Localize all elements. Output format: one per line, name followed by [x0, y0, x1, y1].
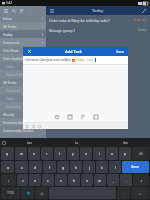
- staticText: Weekly: [3, 112, 15, 117]
- staticText: r: [46, 151, 48, 156]
- button[interactable]: Inbox: [0, 14, 46, 22]
- staticText: e: [33, 151, 35, 156]
- button[interactable]: .: [120, 174, 132, 186]
- button[interactable]: o: [106, 147, 118, 160]
- button[interactable]: Manage group ?: [46, 25, 150, 35]
- button[interactable]: Done: [122, 161, 149, 173]
- button[interactable]: Desserts Auto: [0, 118, 46, 126]
- button[interactable]: m: [94, 174, 106, 186]
- button[interactable]: Over Available: [0, 54, 46, 62]
- button[interactable]: Option 2: [31, 124, 35, 128]
- button[interactable]: Search: [10, 7, 17, 14]
- button[interactable]: Today: [0, 30, 46, 38]
- staticText: w: [20, 151, 23, 156]
- button[interactable]: p: [119, 147, 131, 160]
- button[interactable]: c: [42, 174, 54, 186]
- button[interactable]: v: [55, 174, 67, 186]
- button[interactable]: Personal: [0, 86, 46, 94]
- button[interactable]: Sort: [18, 7, 25, 14]
- button[interactable]: f: [43, 161, 56, 173]
- button[interactable]: t: [54, 147, 66, 160]
- button[interactable]: n: [81, 174, 93, 186]
- button[interactable]: Menu: [2, 7, 9, 14]
- button[interactable]: s: [15, 161, 28, 173]
- button[interactable]: Work / Life: [0, 70, 46, 78]
- button[interactable]: Edit: [141, 8, 147, 14]
- button[interactable]: too: [6, 141, 53, 145]
- button[interactable]: j: [83, 161, 95, 173]
- button[interactable]: a: [1, 161, 14, 173]
- button[interactable]: Weekly: [0, 110, 46, 118]
- button[interactable]: Someday: [0, 102, 46, 110]
- button[interactable]: q: [1, 147, 14, 160]
- button[interactable]: All Tasks: [0, 78, 46, 86]
- staticText: q: [6, 151, 9, 156]
- staticText: Someday: [6, 104, 21, 109]
- staticText: t: [59, 151, 61, 156]
- button[interactable]: Late: [0, 62, 46, 70]
- button[interactable]: to: [53, 141, 101, 145]
- button[interactable]: u: [80, 147, 92, 160]
- button[interactable]: Close: [26, 48, 33, 55]
- staticText: u: [85, 151, 88, 156]
- staticText: v: [60, 178, 62, 183]
- button[interactable]: g: [57, 161, 69, 173]
- staticText: a: [7, 165, 9, 170]
- button[interactable]: Navigation: [49, 8, 55, 14]
- button[interactable]: More: [26, 7, 33, 14]
- staticText: ⌫: [138, 152, 143, 155]
- button[interactable]: k: [96, 161, 108, 173]
- button[interactable]: ?123: [1, 187, 20, 199]
- staticText: 🌐: [26, 191, 30, 195]
- button[interactable]: ⌫: [132, 147, 149, 160]
- button[interactable]: y: [67, 147, 79, 160]
- button[interactable]: d: [29, 161, 42, 173]
- staticText: x: [34, 178, 36, 183]
- button[interactable]: 🌐: [21, 187, 34, 199]
- button[interactable]: ✦: [133, 174, 149, 186]
- button[interactable]: Priority: [78, 112, 87, 121]
- button[interactable]: x: [29, 174, 41, 186]
- staticText: Late: [6, 64, 13, 69]
- staticText: d: [34, 165, 37, 170]
- button[interactable]: Save: [115, 48, 125, 55]
- button[interactable]: z: [17, 174, 28, 186]
- button[interactable]: w: [15, 147, 27, 160]
- button[interactable]: b: [68, 174, 80, 186]
- button[interactable]: Community Center: [0, 126, 46, 134]
- staticText: Save: [116, 49, 124, 54]
- staticText: Done: [131, 165, 140, 169]
- button[interactable]: r: [41, 147, 53, 160]
- staticText: g: [62, 165, 65, 170]
- staticText: Manage group ?: [49, 28, 138, 33]
- staticText: y: [72, 151, 74, 156]
- button[interactable]: i: [93, 147, 105, 160]
- button[interactable]: the: [101, 141, 149, 145]
- button[interactable]: ☺: [35, 187, 48, 199]
- button[interactable]: ⇧: [1, 174, 16, 186]
- button[interactable]: Schedule: [52, 112, 61, 121]
- button[interactable]: l: [109, 161, 121, 173]
- button[interactable]: Option 3: [37, 124, 41, 128]
- button[interactable]: Option 1: [25, 124, 29, 128]
- button[interactable]: This Week: [0, 46, 46, 54]
- button[interactable]: h: [70, 161, 82, 173]
- button[interactable]: All Tasks: [0, 22, 46, 30]
- staticText: h: [75, 165, 78, 170]
- button[interactable]: Tomorrow: [0, 38, 46, 46]
- staticText: z: [22, 178, 24, 183]
- button[interactable]: e: [28, 147, 40, 160]
- button[interactable]: Tag: [91, 112, 100, 121]
- button[interactable]: Emoji: [1, 140, 6, 145]
- staticText: next: [87, 58, 94, 62]
- button[interactable]: Team: [0, 94, 46, 102]
- staticText: the: [123, 141, 128, 145]
- button[interactable]: ↵: [131, 187, 149, 199]
- staticText: Today: [3, 32, 13, 37]
- staticText: All Tasks: [3, 24, 17, 29]
- button[interactable]: ,: [107, 174, 119, 186]
- button[interactable]: Calendar: [65, 112, 74, 121]
- button[interactable]: Order cake at Mary for birthday cake ?: [46, 15, 150, 25]
